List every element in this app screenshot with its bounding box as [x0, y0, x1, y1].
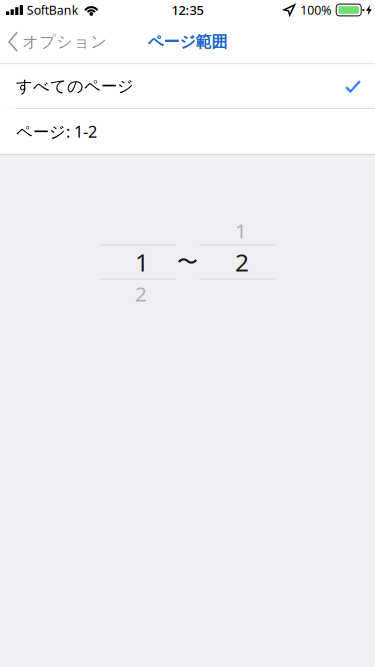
staticText: 〜 — [177, 249, 198, 275]
staticText: 2 — [235, 245, 249, 279]
staticText: 2 — [135, 279, 147, 307]
button[interactable]: オプション — [0, 20, 117, 63]
staticText: 12:35 — [171, 1, 203, 19]
staticText: すべてのページ — [16, 76, 134, 96]
staticText: ページ: 1-2 — [16, 120, 97, 143]
staticText: SoftBank — [27, 2, 79, 18]
button[interactable]: ページ: 1-2 — [0, 109, 375, 154]
staticText: 1 — [135, 245, 149, 279]
staticText: オプション — [22, 31, 107, 52]
staticText: 100% — [300, 2, 331, 18]
button[interactable]: すべてのページ — [0, 64, 375, 108]
staticText: 1 — [235, 216, 247, 244]
staticText: ページ範囲 — [147, 32, 227, 52]
